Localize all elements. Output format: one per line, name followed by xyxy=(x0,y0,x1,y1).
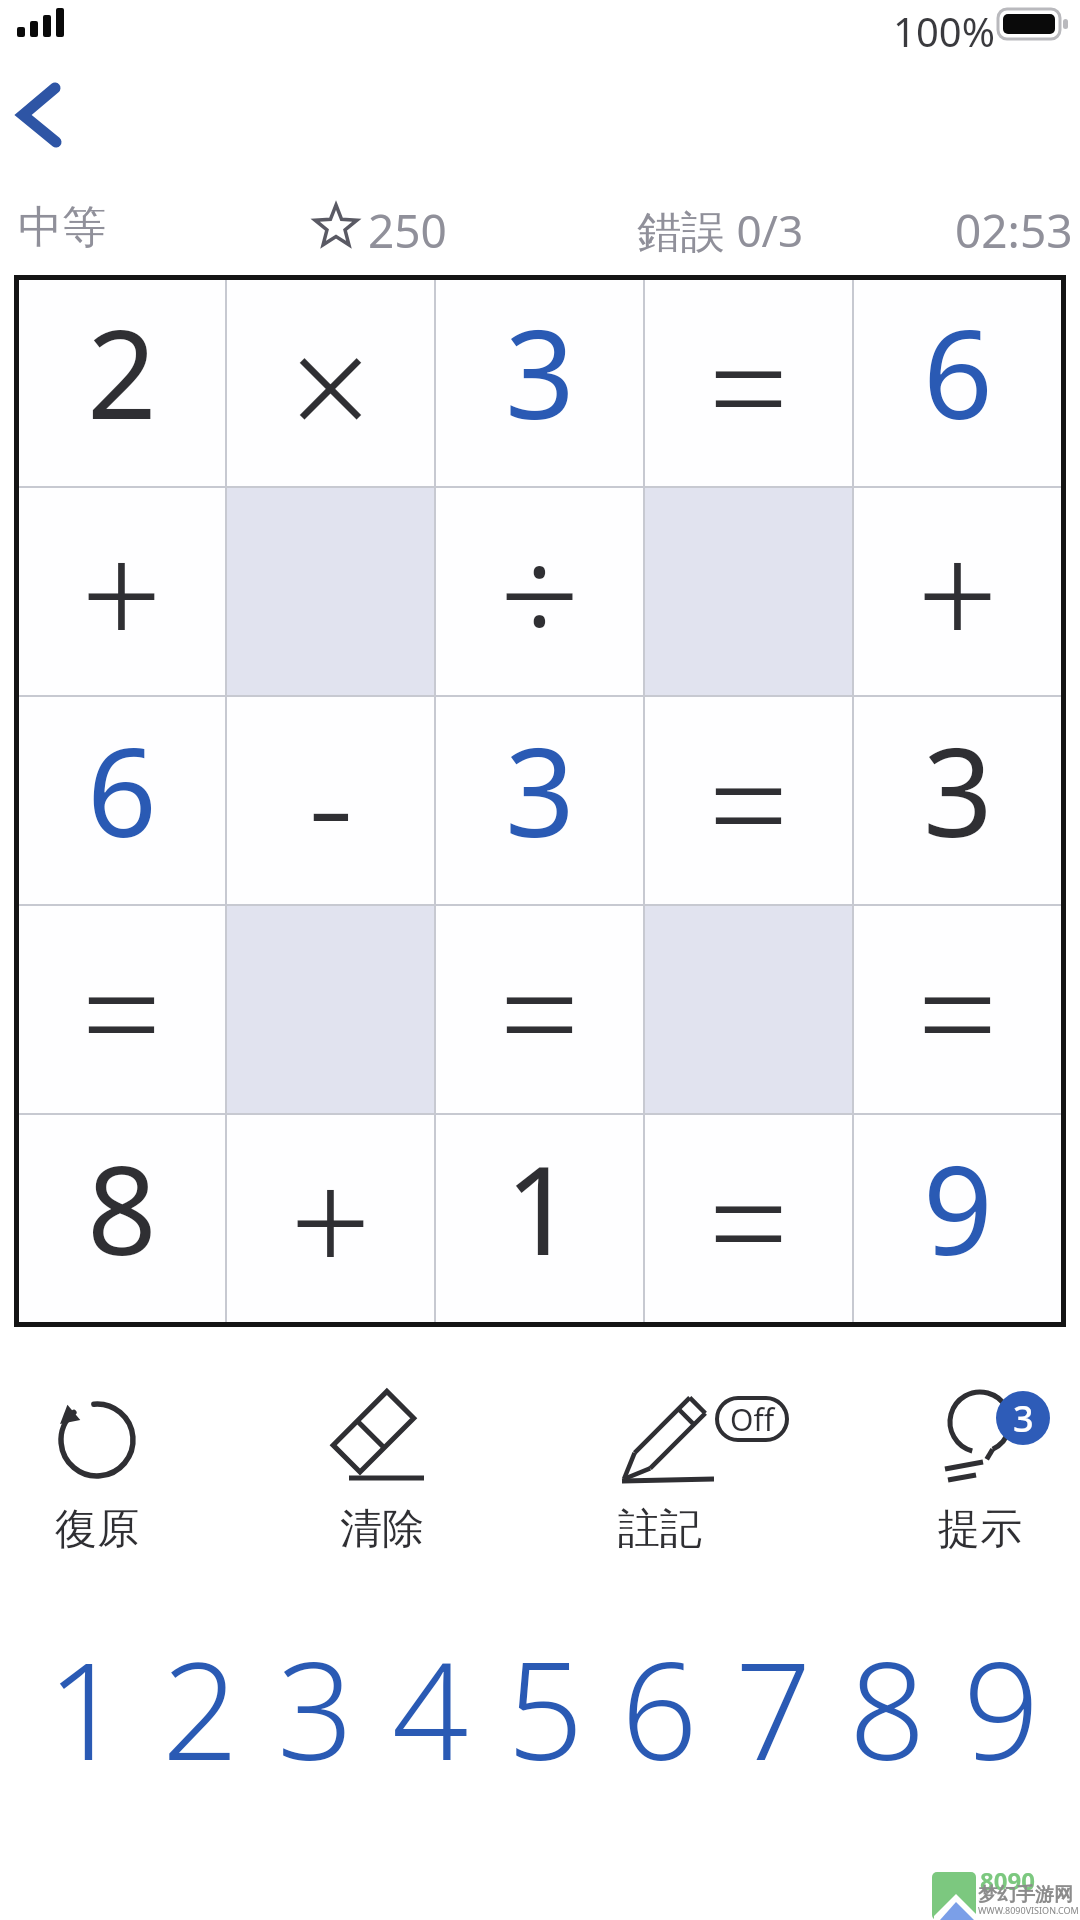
button[interactable]: 4 xyxy=(373,1617,488,1787)
button[interactable]: = xyxy=(645,697,852,904)
staticText: 6 xyxy=(923,289,993,455)
staticText: 8 xyxy=(87,1125,157,1291)
staticText: + xyxy=(917,495,999,688)
button[interactable]: + xyxy=(19,488,225,695)
staticText: 1 xyxy=(505,1125,575,1291)
button[interactable]: = xyxy=(19,906,225,1113)
button[interactable]: 2 xyxy=(19,280,225,486)
button[interactable]: + xyxy=(854,488,1061,695)
button[interactable] xyxy=(10,74,90,158)
staticText: 4 xyxy=(392,1617,469,1787)
staticText: 3 xyxy=(277,1617,354,1787)
staticText: 8090 xyxy=(980,1864,1035,1897)
staticText: 6 xyxy=(87,707,157,873)
staticText: 清除 xyxy=(340,1503,424,1556)
button[interactable]: 3 xyxy=(910,1385,1070,1560)
staticText: 7 xyxy=(735,1617,812,1787)
staticText: 錯誤 0/3 xyxy=(637,200,804,260)
button[interactable]: 6 xyxy=(19,697,225,904)
button[interactable]: 3 xyxy=(258,1617,373,1787)
button[interactable]: = xyxy=(645,280,852,486)
button[interactable]: 3 xyxy=(854,697,1061,904)
button[interactable]: × xyxy=(227,280,434,486)
staticText: 100% xyxy=(893,4,995,58)
staticText: + xyxy=(81,495,163,688)
staticText: = xyxy=(708,704,790,897)
button[interactable]: 5 xyxy=(488,1617,602,1787)
staticText: 2 xyxy=(87,289,157,455)
button[interactable]: 7 xyxy=(716,1617,830,1787)
staticText: WWW.8090VISION.COM xyxy=(978,1904,1079,1916)
staticText: 6 xyxy=(621,1617,698,1787)
staticText: 3 xyxy=(1013,1394,1034,1443)
staticText: × xyxy=(290,287,372,480)
staticText: 3 xyxy=(923,707,993,873)
staticText: 註記 xyxy=(618,1503,702,1556)
staticText: 250 xyxy=(368,199,447,262)
button[interactable]: 6 xyxy=(854,280,1061,486)
staticText: 提示 xyxy=(938,1503,1022,1556)
staticText: 1 xyxy=(47,1617,124,1787)
button[interactable]: 復原 xyxy=(40,1385,160,1560)
staticText: 9 xyxy=(923,1125,993,1291)
button[interactable]: 清除 xyxy=(320,1385,450,1560)
button[interactable]: = xyxy=(854,906,1061,1113)
staticText: = xyxy=(708,287,790,480)
button[interactable]: 3 xyxy=(436,697,643,904)
staticText: + xyxy=(290,1122,372,1315)
staticText: 中等 xyxy=(18,200,106,255)
staticText: 2 xyxy=(162,1617,239,1787)
button[interactable]: - xyxy=(227,697,434,904)
staticText: = xyxy=(917,913,999,1106)
staticText: 5 xyxy=(507,1617,584,1787)
button[interactable]: = xyxy=(645,1115,852,1322)
staticText: - xyxy=(308,704,354,897)
staticText: 復原 xyxy=(55,1503,139,1556)
button[interactable]: = xyxy=(436,906,643,1113)
staticText: 02:53 xyxy=(955,199,1073,262)
button[interactable]: 8 xyxy=(19,1115,225,1322)
button[interactable]: 2 xyxy=(143,1617,258,1787)
button[interactable]: 3 xyxy=(436,280,643,486)
staticText: = xyxy=(708,1122,790,1315)
button[interactable]: + xyxy=(227,1115,434,1322)
staticText: 9 xyxy=(963,1617,1040,1787)
staticText: = xyxy=(81,913,163,1106)
staticText: = xyxy=(499,913,581,1106)
staticText: ÷ xyxy=(499,495,581,688)
button[interactable]: 1 xyxy=(436,1115,643,1322)
button[interactable]: 9 xyxy=(944,1617,1058,1787)
staticText: 3 xyxy=(505,289,575,455)
button[interactable]: Off xyxy=(600,1385,810,1560)
staticText: 8 xyxy=(849,1617,926,1787)
button[interactable]: 1 xyxy=(28,1617,143,1787)
button[interactable]: 8 xyxy=(830,1617,944,1787)
button[interactable]: ÷ xyxy=(436,488,643,695)
button[interactable]: 9 xyxy=(854,1115,1061,1322)
staticText: Off xyxy=(730,1399,775,1440)
staticText: 3 xyxy=(505,707,575,873)
button[interactable]: 6 xyxy=(602,1617,716,1787)
staticText: 梦幻手游网 xyxy=(978,1883,1073,1907)
